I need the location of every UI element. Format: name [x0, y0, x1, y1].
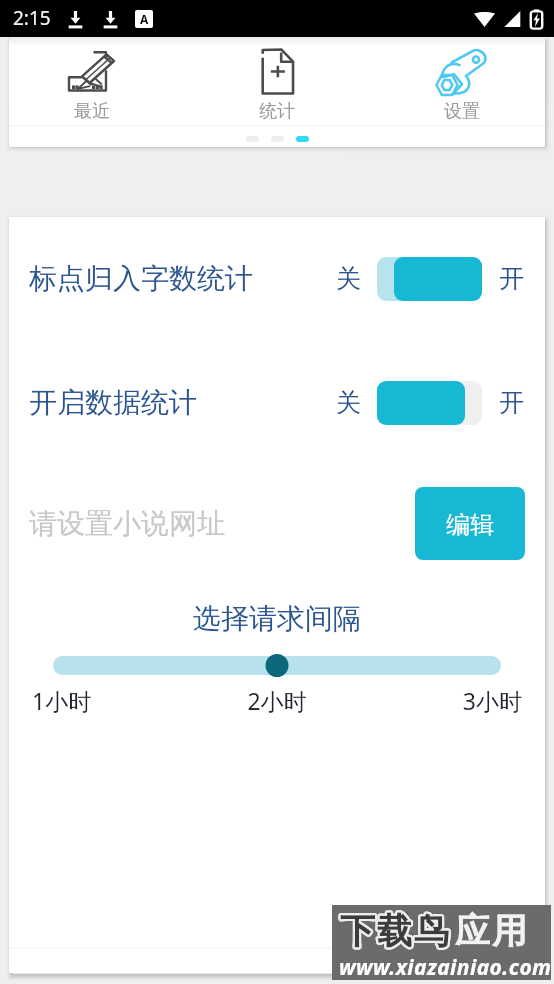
- button[interactable]: 编辑: [415, 487, 525, 560]
- staticText: 下载鸟: [341, 910, 452, 954]
- button[interactable]: 开启数据统计: [9, 377, 545, 427]
- staticText: 应用: [454, 909, 528, 953]
- button[interactable]: Statistics: [217, 37, 337, 133]
- staticText: 关: [336, 387, 361, 418]
- staticText: 下载鸟: [339, 911, 450, 955]
- staticText: 2:15: [13, 5, 51, 31]
- button[interactable]: Request interval slider: [53, 647, 501, 681]
- staticText: 2小时: [9, 685, 545, 716]
- staticText: 关: [336, 263, 361, 294]
- staticText: 下载鸟: [339, 908, 450, 952]
- staticText: A: [140, 11, 149, 27]
- staticText: 下载鸟: [338, 911, 449, 955]
- staticText: 编辑: [446, 510, 494, 540]
- staticText: 3小时: [9, 685, 522, 716]
- staticText: 下载鸟: [339, 907, 450, 951]
- staticText: 下载鸟: [337, 909, 448, 953]
- other: Recent: [67, 50, 117, 94]
- staticText: 下载鸟: [338, 909, 449, 953]
- staticText: 标点归入字数统计: [29, 261, 253, 296]
- button[interactable]: 标点归入字数统计: [9, 253, 545, 303]
- staticText: 选择请求间隔: [9, 601, 545, 636]
- staticText: 下载鸟: [340, 911, 451, 955]
- staticText: 下载鸟: [339, 910, 450, 954]
- staticText: 请设置小说网址: [29, 506, 225, 541]
- staticText: 下载鸟: [340, 909, 451, 953]
- staticText: 下载鸟: [340, 910, 451, 954]
- staticText: 下载鸟: [338, 908, 449, 952]
- staticText: 下载鸟: [340, 908, 451, 952]
- staticText: 开: [499, 263, 524, 294]
- staticText: 统计: [217, 100, 337, 123]
- button[interactable]: Recent: [32, 37, 152, 133]
- staticText: 下载鸟: [341, 909, 452, 953]
- staticText: 下载鸟: [338, 907, 449, 951]
- staticText: 下载鸟: [339, 909, 450, 953]
- staticText: 下载鸟: [341, 908, 452, 952]
- button[interactable]: Page indicator: [246, 129, 309, 147]
- staticText: 设置: [402, 100, 522, 123]
- button[interactable]: Settings: [402, 37, 522, 133]
- staticText: 下载鸟: [337, 908, 448, 952]
- button[interactable]: On: [377, 255, 482, 302]
- staticText: 最近: [32, 100, 152, 123]
- staticText: 1小时: [32, 685, 92, 716]
- button[interactable]: Off: [377, 379, 482, 426]
- staticText: 开启数据统计: [29, 385, 197, 420]
- other: Settings: [437, 49, 487, 94]
- staticText: 下载鸟: [337, 910, 448, 954]
- staticText: 下载鸟: [338, 910, 449, 954]
- staticText: 开: [499, 387, 524, 418]
- staticText: 下载鸟: [340, 907, 451, 951]
- staticText: 下载鸟: [339, 909, 450, 953]
- staticText: www.xiazainiao.com: [339, 953, 552, 982]
- other: Statistics: [259, 47, 296, 96]
